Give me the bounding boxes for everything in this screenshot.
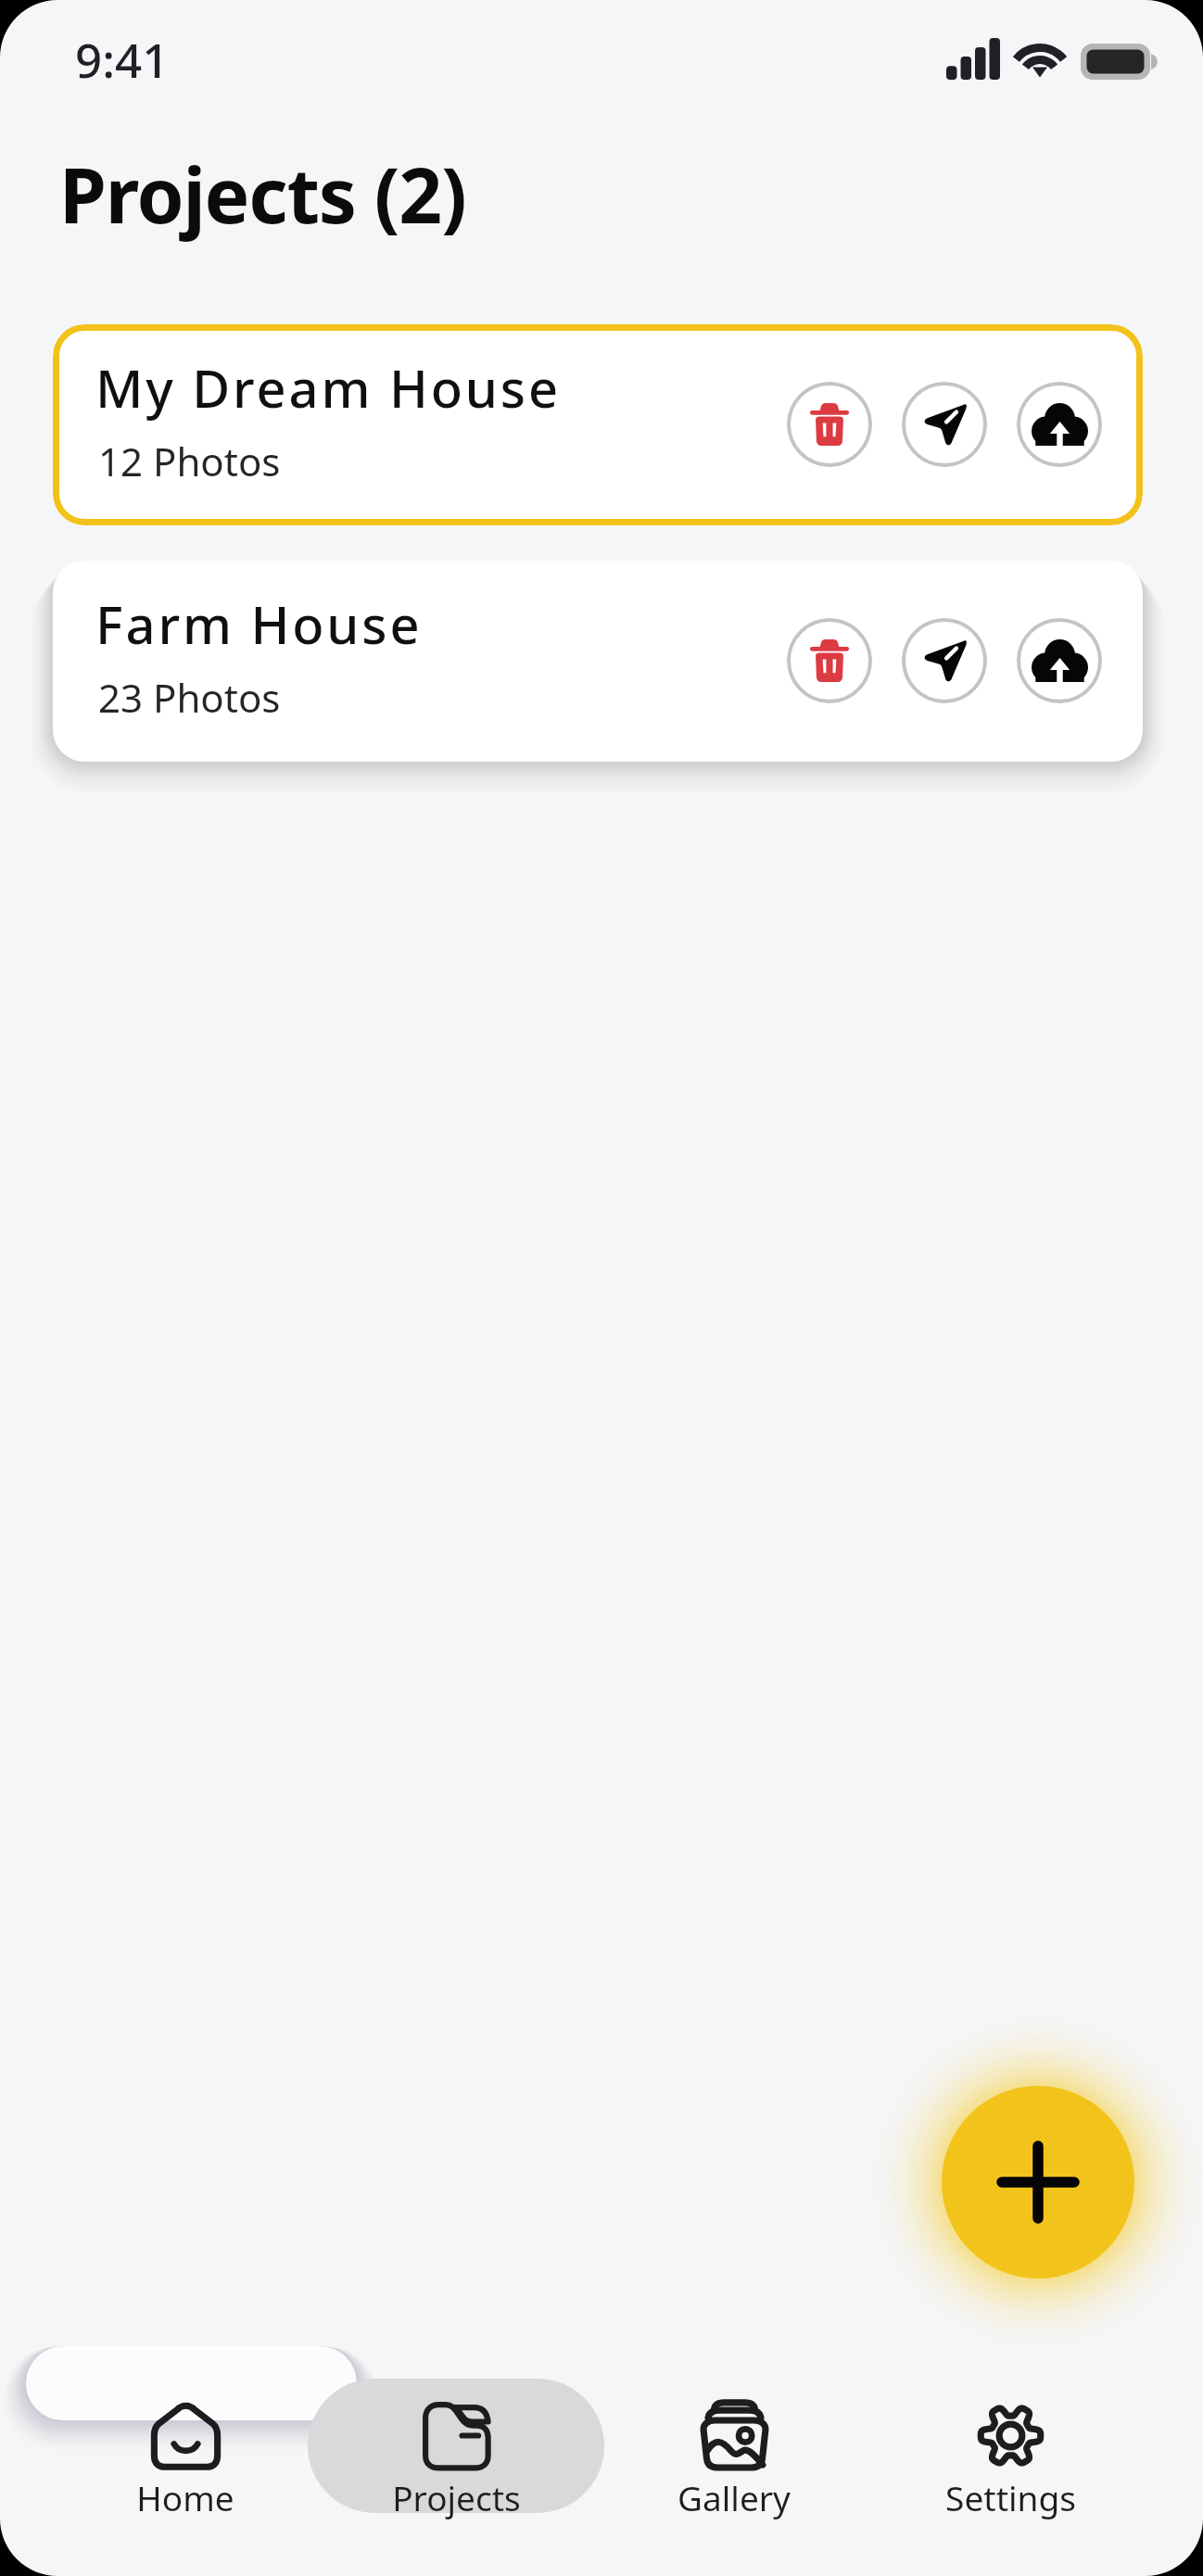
button[interactable] (308, 2379, 604, 2513)
button[interactable] (37, 2379, 334, 2513)
button[interactable]: Farm House (53, 561, 1143, 762)
staticText: Gallery (677, 2474, 791, 2520)
staticText: My Dream House (95, 352, 561, 423)
button[interactable]: Add project (942, 2086, 1134, 2279)
staticText: Home (136, 2474, 234, 2520)
staticText: Projects (2) (59, 142, 466, 246)
button[interactable]: Upload (1017, 618, 1102, 703)
staticText: Settings (945, 2474, 1076, 2520)
button[interactable]: Delete (787, 618, 872, 703)
staticText: 23 Photos (98, 671, 281, 724)
button[interactable]: Upload (1017, 382, 1102, 467)
button[interactable]: Share (902, 618, 987, 703)
staticText: 12 Photos (98, 435, 281, 487)
button[interactable] (862, 2379, 1159, 2513)
button[interactable]: My Dream House (53, 324, 1143, 525)
button[interactable]: Delete (787, 382, 872, 467)
button[interactable]: Share (902, 382, 987, 467)
button[interactable] (586, 2379, 882, 2513)
staticText: Projects (392, 2474, 521, 2520)
staticText: 9:41 (75, 27, 170, 91)
staticText: Farm House (95, 588, 423, 659)
